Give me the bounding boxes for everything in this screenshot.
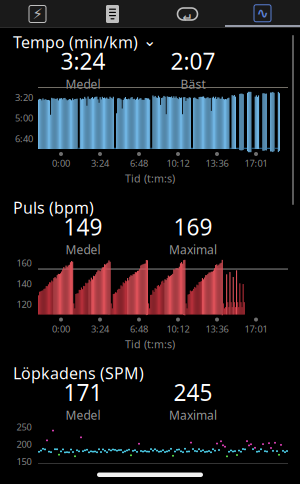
staticText: 13:36 [205, 323, 228, 335]
button[interactable]: Details [75, 1, 150, 27]
staticText: Medel [65, 407, 100, 423]
staticText: 6:48 [130, 157, 148, 169]
staticText: Maximal [169, 407, 217, 423]
staticText: 245 [173, 377, 212, 407]
staticText: 120 [16, 298, 31, 310]
staticText: Medel [65, 76, 100, 92]
staticText: 3:20 [15, 91, 33, 103]
staticText: Maximal [169, 242, 217, 257]
button[interactable]: Charts [225, 1, 300, 27]
staticText: Tempo (min/km) [13, 31, 138, 53]
staticText: 10:12 [166, 157, 189, 169]
staticText: ⚡︎ [32, 6, 42, 22]
staticText: 13:36 [205, 157, 228, 169]
staticText: 3:24 [91, 157, 109, 169]
staticText: Puls (bpm) [13, 197, 94, 218]
staticText: Bäst [180, 76, 205, 92]
staticText: 0:00 [52, 157, 70, 169]
staticText: 17:01 [244, 157, 267, 169]
staticText: 149 [63, 211, 102, 242]
staticText: 17:01 [244, 323, 267, 335]
staticText: Medel [65, 242, 100, 257]
staticText: 200 [16, 438, 31, 450]
staticText: 140 [16, 277, 31, 290]
staticText: Tid (t:m:s) [125, 337, 175, 351]
staticText: ∿ [256, 5, 268, 21]
staticText: 6:48 [130, 323, 148, 335]
staticText: ⌄ [143, 31, 156, 50]
staticText: Löpkadens (SPM) [13, 362, 144, 384]
staticText: 250 [16, 421, 31, 433]
button[interactable]: Summary [0, 1, 75, 27]
staticText: ↵ [182, 11, 192, 24]
staticText: 2:07 [170, 46, 215, 76]
staticText: 150 [16, 455, 31, 468]
staticText: 3:24 [60, 46, 105, 76]
staticText: 0:00 [52, 323, 70, 335]
staticText: 160 [16, 257, 31, 269]
staticText: Tid (t:m:s) [125, 171, 175, 186]
staticText: 6:40 [15, 132, 33, 145]
staticText: 3:24 [91, 323, 109, 335]
button[interactable]: Laps [150, 1, 225, 27]
staticText: 5:00 [15, 112, 33, 124]
staticText: 169 [173, 211, 212, 242]
staticText: 10:12 [166, 323, 189, 335]
staticText: 171 [63, 377, 102, 407]
